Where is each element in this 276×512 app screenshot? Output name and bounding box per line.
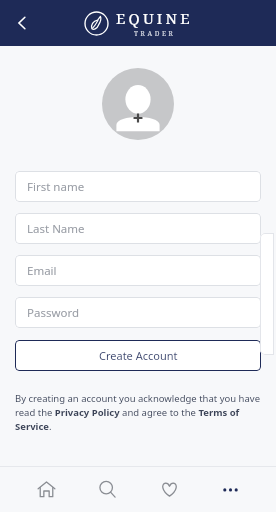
staticText: TRADER [134, 29, 176, 38]
button[interactable]: Favorites [147, 467, 191, 511]
button[interactable]: More [208, 467, 252, 511]
button[interactable]: Add profile photo [102, 68, 174, 140]
button[interactable]: Create Account [15, 340, 261, 371]
staticText: EQUINE [116, 8, 193, 28]
staticText: Last Name [27, 221, 85, 237]
button[interactable]: Home [24, 467, 68, 511]
button[interactable]: Search [85, 467, 129, 511]
staticText: First name [27, 179, 85, 195]
button[interactable]: Back [6, 7, 38, 39]
button[interactable]: By creating an account you acknowledge t… [15, 392, 261, 433]
button[interactable]: Last Name [15, 213, 261, 244]
button[interactable]: First name [15, 171, 261, 202]
button[interactable]: Email [15, 255, 261, 286]
staticText: Email [27, 263, 57, 279]
button[interactable]: Password [15, 297, 261, 328]
staticText: Password [27, 305, 80, 321]
staticText: Create Account [99, 348, 178, 363]
